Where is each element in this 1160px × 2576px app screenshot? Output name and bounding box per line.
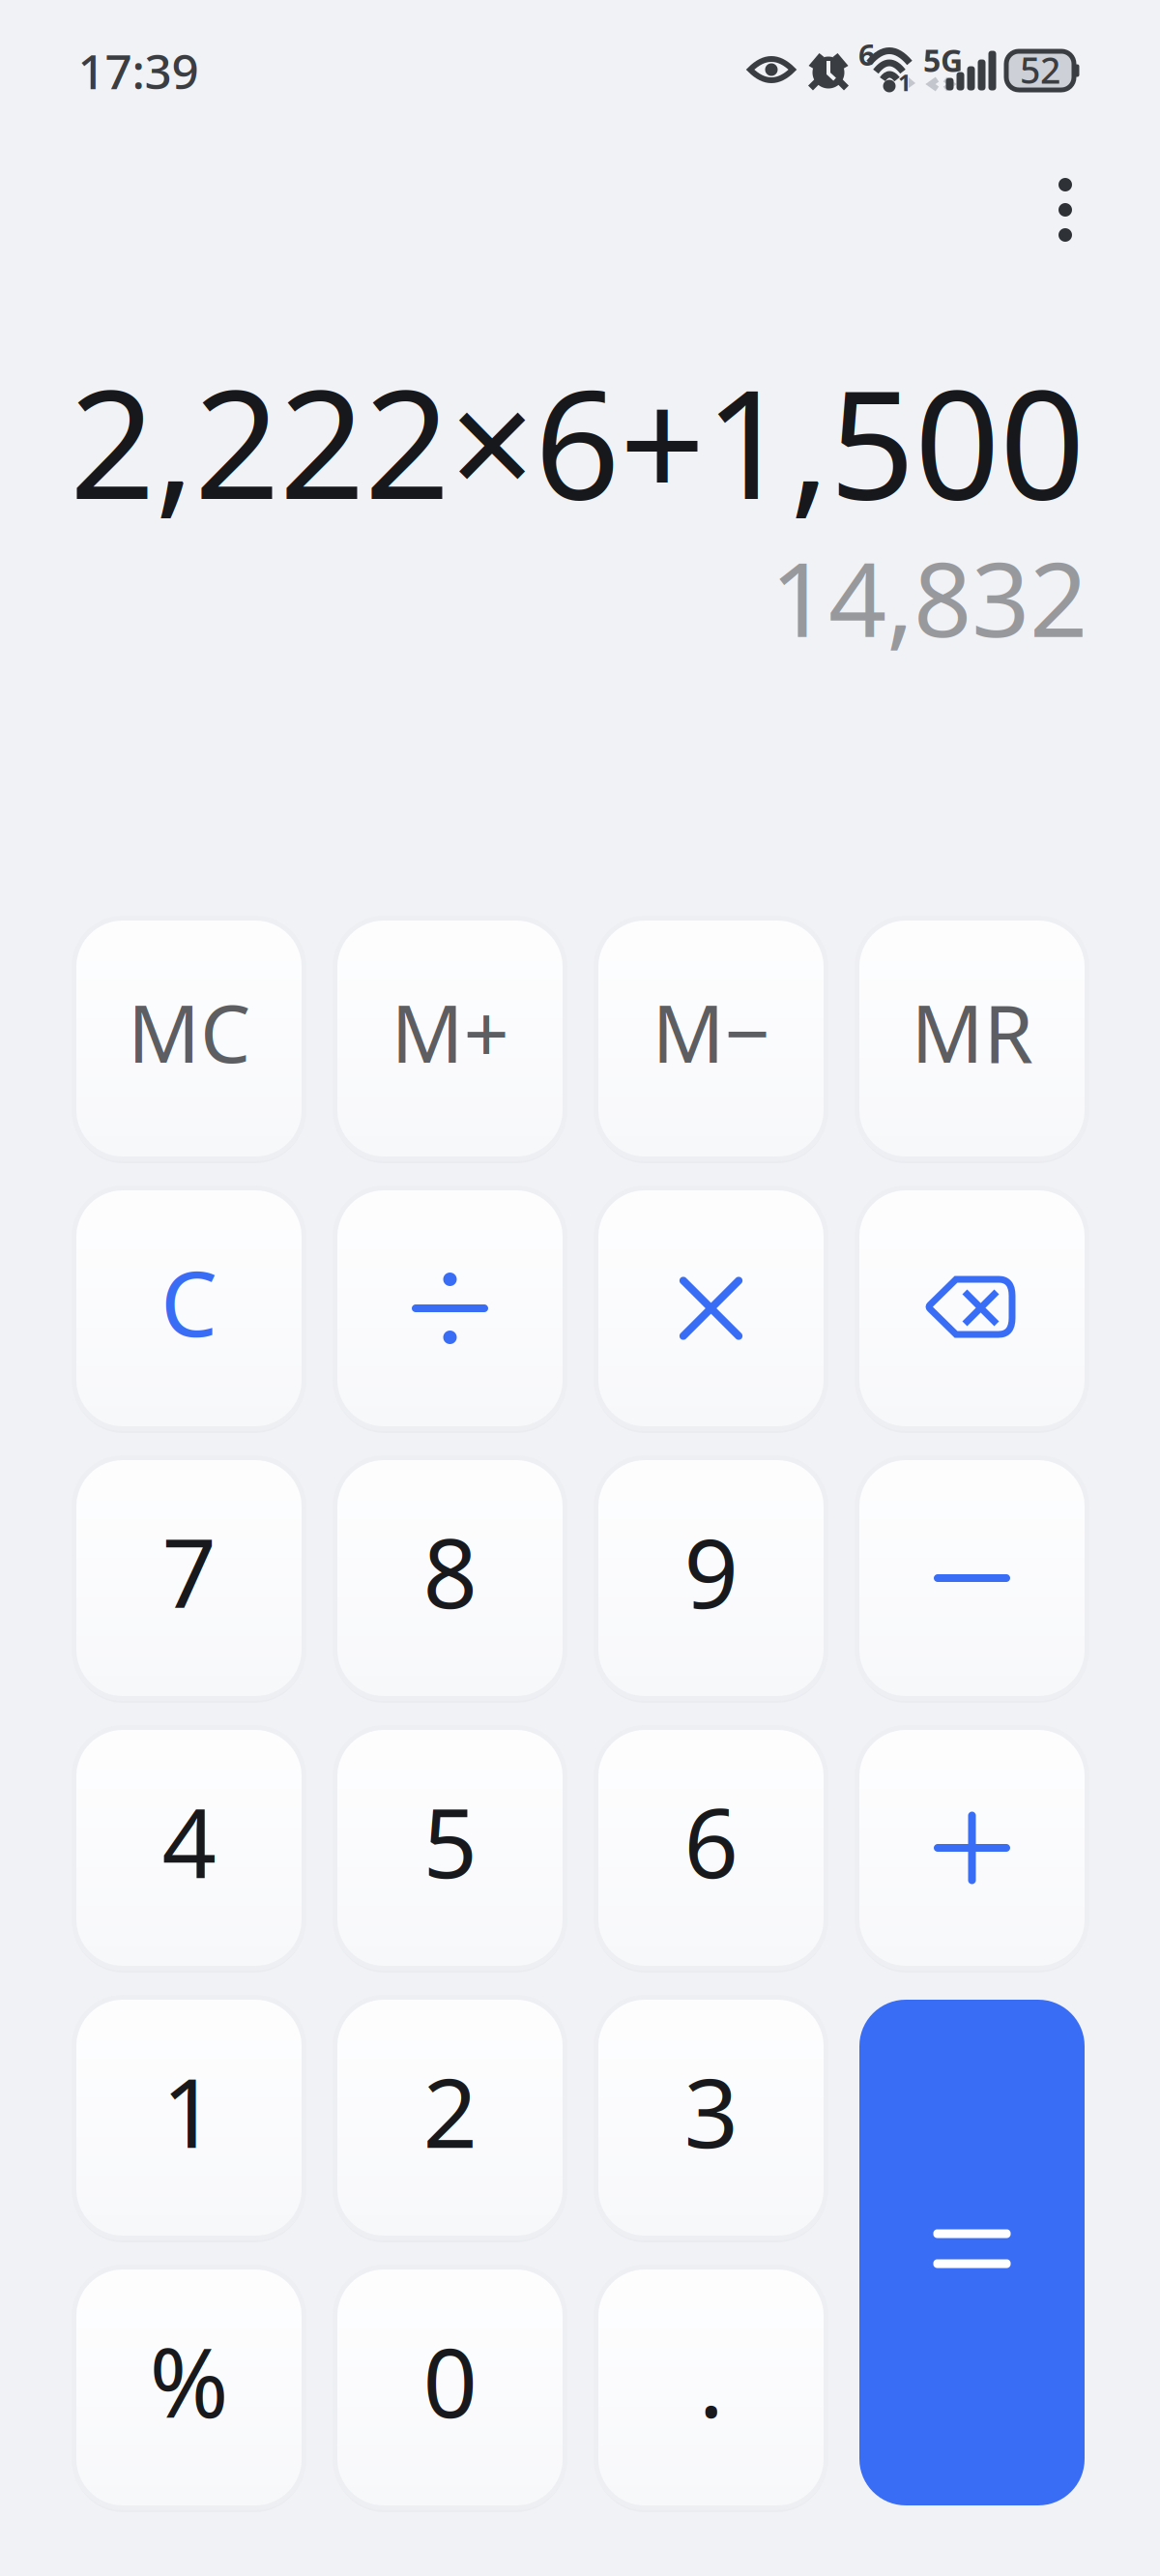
button[interactable]: Plus xyxy=(855,1725,1089,1971)
button[interactable]: Equals xyxy=(859,2000,1085,2505)
staticText: 5G xyxy=(923,39,963,81)
button[interactable]: MC xyxy=(72,916,306,1161)
button[interactable]: 9 xyxy=(594,1455,828,1701)
staticText: M+ xyxy=(391,979,509,1085)
button[interactable]: MR xyxy=(855,916,1089,1161)
staticText: 52 xyxy=(1020,46,1060,94)
button[interactable]: M− xyxy=(594,916,828,1161)
button[interactable]: Minus xyxy=(855,1455,1089,1701)
staticText: 3 xyxy=(684,2048,738,2174)
button[interactable]: % xyxy=(72,2265,306,2510)
button[interactable]: C xyxy=(72,1186,306,1431)
button[interactable]: Backspace xyxy=(855,1186,1089,1431)
button[interactable]: 2 xyxy=(333,1995,567,2240)
button[interactable]: M+ xyxy=(333,916,567,1161)
button[interactable]: 7 xyxy=(72,1455,306,1701)
button[interactable]: 3 xyxy=(594,1995,828,2240)
staticText: 14,832 xyxy=(770,530,1087,665)
staticText: % xyxy=(149,2317,229,2444)
staticText: 9 xyxy=(684,1508,738,1635)
staticText: M− xyxy=(652,979,770,1085)
staticText: 1 xyxy=(898,67,912,98)
staticText: 2 xyxy=(423,2048,477,2174)
button[interactable]: More options xyxy=(1015,152,1116,268)
staticText: 6 xyxy=(858,34,876,74)
staticText: 7 xyxy=(162,1508,216,1635)
button[interactable]: Divide xyxy=(333,1186,567,1431)
button[interactable]: 4 xyxy=(72,1725,306,1971)
staticText: . xyxy=(698,2317,724,2444)
button[interactable]: 0 xyxy=(333,2265,567,2510)
button[interactable]: 8 xyxy=(333,1455,567,1701)
staticText: MR xyxy=(911,979,1033,1085)
staticText: 4 xyxy=(162,1778,216,1904)
staticText: 0 xyxy=(423,2317,477,2444)
staticText: 8 xyxy=(423,1508,477,1635)
button[interactable]: Multiply xyxy=(594,1186,828,1431)
staticText: 2,222×6+1,500 xyxy=(70,342,1085,540)
staticText: C xyxy=(160,1242,217,1361)
button[interactable]: . xyxy=(594,2265,828,2510)
staticText: 17:39 xyxy=(78,39,199,102)
staticText: MC xyxy=(128,979,250,1085)
button[interactable]: 5 xyxy=(333,1725,567,1971)
staticText: 1 xyxy=(162,2048,216,2174)
button[interactable]: 1 xyxy=(72,1995,306,2240)
staticText: 5 xyxy=(423,1778,477,1904)
staticText: 6 xyxy=(684,1778,738,1904)
button[interactable]: 6 xyxy=(594,1725,828,1971)
